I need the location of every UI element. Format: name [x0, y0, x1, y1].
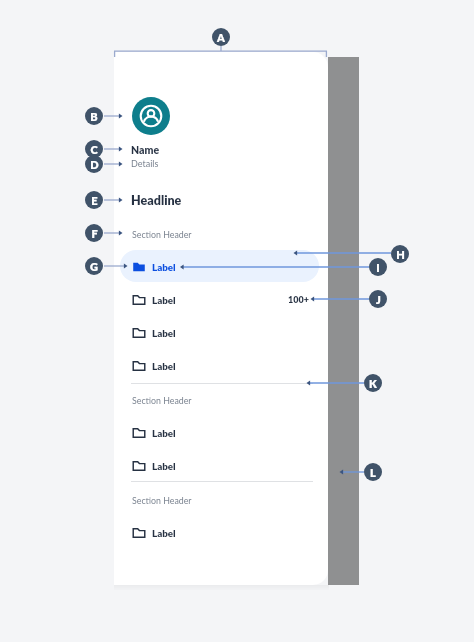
staticText: Label: [152, 261, 176, 273]
staticText: E: [91, 194, 98, 207]
staticText: G: [90, 260, 98, 273]
staticText: J: [376, 293, 381, 306]
staticText: Section Header: [132, 495, 192, 506]
staticText: Details: [131, 158, 159, 169]
button[interactable]: [120, 250, 319, 282]
staticText: 100+: [288, 294, 309, 305]
staticText: I: [376, 261, 380, 274]
staticText: Label: [152, 460, 176, 472]
staticText: Label: [152, 327, 176, 339]
button[interactable]: [122, 519, 318, 547]
button[interactable]: [122, 286, 318, 314]
staticText: D: [90, 158, 99, 171]
staticText: A: [217, 31, 225, 44]
staticText: Section Header: [132, 229, 192, 240]
staticText: L: [370, 466, 376, 479]
staticText: B: [90, 110, 98, 123]
staticText: Name: [131, 144, 160, 157]
button[interactable]: Account avatar: [132, 97, 170, 135]
button[interactable]: [122, 253, 318, 281]
staticText: Label: [152, 527, 176, 539]
staticText: C: [90, 143, 98, 156]
staticText: H: [396, 248, 405, 261]
button[interactable]: [122, 452, 318, 480]
staticText: K: [369, 377, 377, 390]
staticText: Label: [152, 294, 176, 306]
button[interactable]: [122, 419, 318, 447]
staticText: F: [91, 227, 98, 240]
button[interactable]: [122, 352, 318, 380]
staticText: Label: [152, 360, 176, 372]
staticText: Section Header: [132, 395, 192, 406]
button[interactable]: [122, 319, 318, 347]
staticText: Label: [152, 427, 176, 439]
staticText: Headline: [131, 193, 182, 208]
